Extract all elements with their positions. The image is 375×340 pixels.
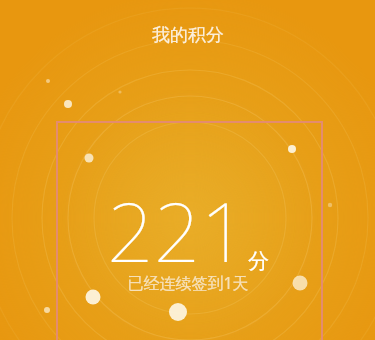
staticText: 已经连续签到1天 bbox=[127, 272, 249, 294]
staticText: 我的积分 bbox=[152, 24, 224, 47]
staticText: 221 bbox=[107, 174, 248, 286]
button[interactable]: 221 bbox=[107, 174, 269, 286]
staticText: 分 bbox=[248, 248, 269, 274]
